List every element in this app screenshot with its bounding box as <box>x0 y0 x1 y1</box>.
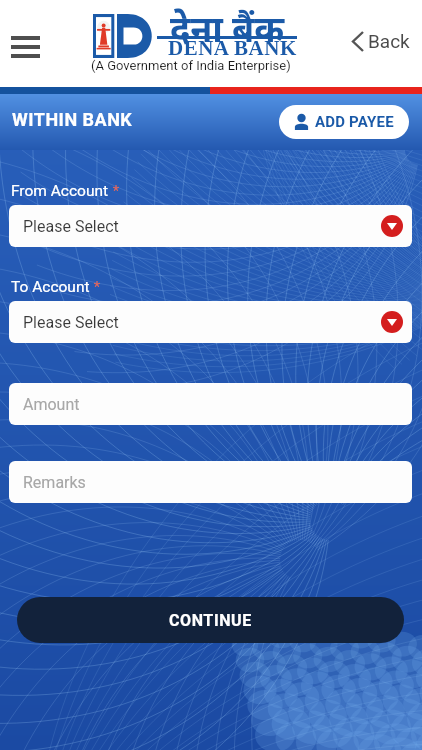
staticText: ADD PAYEE <box>315 113 394 131</box>
button[interactable]: CONTINUE <box>17 597 404 643</box>
staticText: CONTINUE <box>169 611 252 630</box>
button[interactable]: Please Select <box>9 301 412 343</box>
staticText: WITHIN BANK <box>12 109 133 130</box>
staticText: * <box>90 278 101 296</box>
staticText: From Account <box>11 182 109 200</box>
staticText: Please Select <box>23 313 119 332</box>
staticText: Amount <box>23 395 80 414</box>
staticText: देना बैंक <box>170 4 285 53</box>
button[interactable]: Remarks <box>9 461 412 503</box>
button[interactable]: Open dropdown <box>381 215 403 237</box>
staticText: (A Government of India Enterprise) <box>91 58 291 73</box>
button[interactable]: Open dropdown <box>381 311 403 333</box>
button[interactable]: Amount <box>9 383 412 425</box>
button[interactable]: Menu <box>5 30 46 64</box>
staticText: To Account <box>11 278 90 296</box>
staticText: DENA BANK <box>168 36 297 59</box>
staticText: * <box>109 182 120 200</box>
staticText: Remarks <box>23 473 86 492</box>
button[interactable]: Back <box>353 30 410 52</box>
button[interactable]: Please Select <box>9 205 412 247</box>
button[interactable]: ADD PAYEE <box>279 105 409 139</box>
staticText: Please Select <box>23 217 119 236</box>
staticText: Back <box>368 30 410 52</box>
